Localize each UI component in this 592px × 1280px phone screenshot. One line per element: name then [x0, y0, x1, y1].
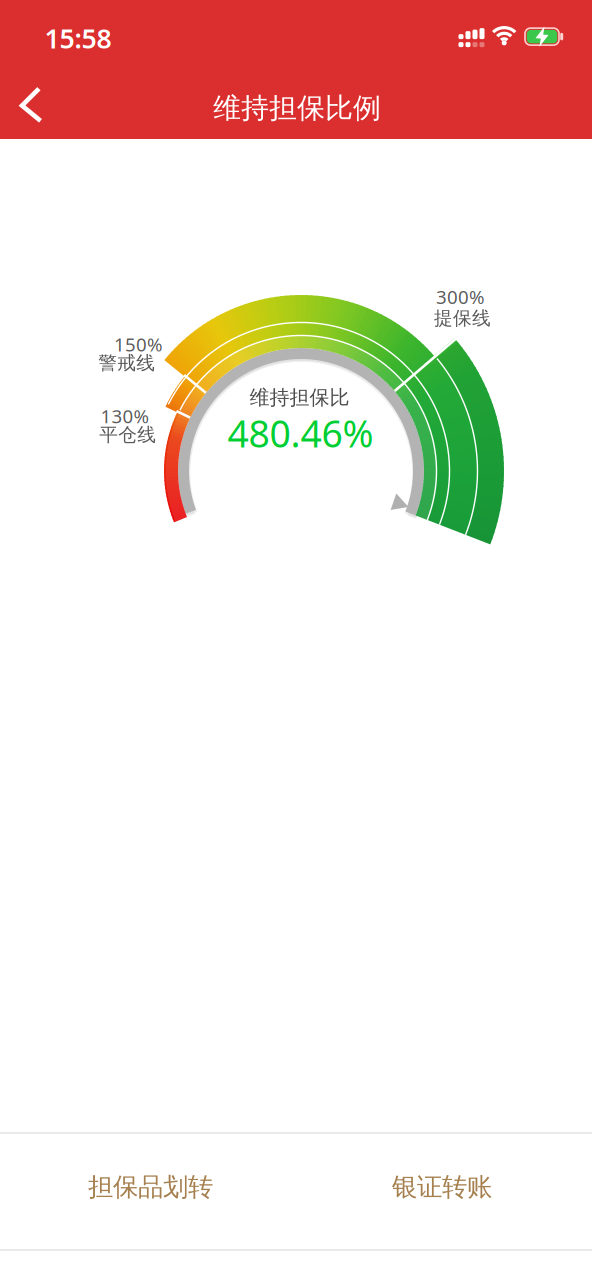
staticText: 银证转账	[392, 1171, 492, 1202]
staticText: 300%	[436, 284, 485, 309]
staticText: 提保线	[434, 307, 491, 330]
button[interactable]: 银证转账	[352, 1129, 532, 1244]
staticText: 担保品划转	[88, 1171, 213, 1202]
staticText: 150%	[114, 332, 163, 357]
button[interactable]: Back	[13, 81, 49, 129]
staticText: 480.46%	[227, 408, 373, 458]
staticText: 130%	[101, 403, 150, 428]
button[interactable]: 担保品划转	[48, 1129, 253, 1244]
staticText: 15:58	[44, 20, 111, 56]
staticText: 维持担保比	[249, 385, 349, 410]
staticText: 维持担保比例	[213, 91, 381, 125]
staticText: 警戒线	[98, 352, 155, 374]
staticText: 平仓线	[99, 423, 156, 446]
